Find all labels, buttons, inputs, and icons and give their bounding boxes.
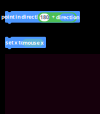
staticText: 180 xyxy=(40,14,49,21)
staticText: mouse x xyxy=(22,39,43,46)
staticText: + xyxy=(52,14,55,21)
button[interactable]: set x to xyxy=(5,37,46,50)
staticText: point in direction xyxy=(1,13,44,20)
staticText: set x to xyxy=(5,39,23,46)
staticText: direction xyxy=(56,14,79,21)
button[interactable]: point in direction xyxy=(5,11,80,24)
